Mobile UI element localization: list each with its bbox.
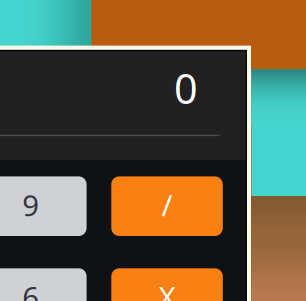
button[interactable]: 6 <box>0 268 87 301</box>
staticText: 9 <box>22 185 39 224</box>
button[interactable]: / <box>111 176 223 236</box>
staticText: 0 <box>174 61 198 115</box>
staticText: X <box>159 277 176 301</box>
button[interactable]: X <box>111 268 223 301</box>
staticText: 6 <box>22 277 39 301</box>
button[interactable]: 9 <box>0 176 87 236</box>
staticText: / <box>162 185 173 224</box>
